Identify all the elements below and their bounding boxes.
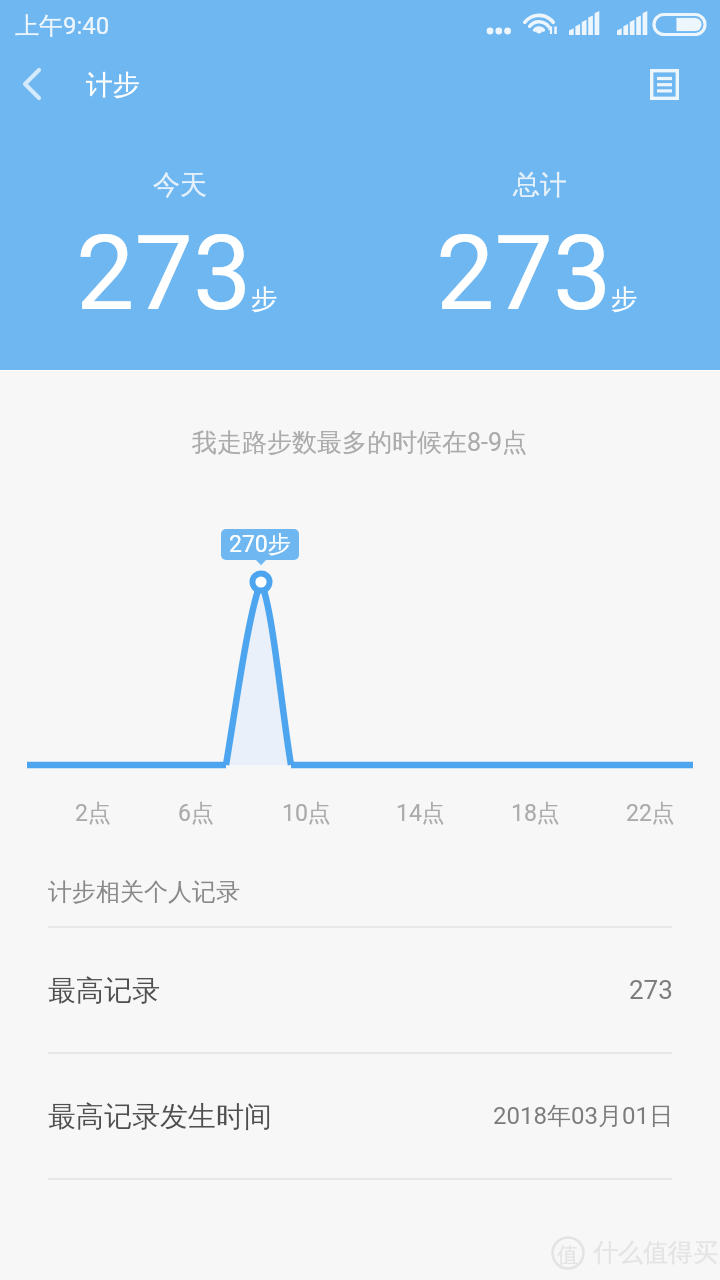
staticText: 273	[76, 213, 252, 335]
staticText: 步	[251, 283, 277, 316]
staticText: 6点	[178, 799, 214, 828]
staticText: 2点	[75, 799, 111, 828]
button[interactable]: 最高记录发生时间	[0, 1054, 720, 1178]
staticText: 今天	[153, 168, 207, 202]
staticText: 最高记录	[48, 973, 160, 1008]
staticText: 总计	[513, 168, 567, 202]
staticText: 上午9:40	[15, 11, 110, 41]
staticText: 10点	[282, 799, 331, 828]
staticText: 273	[436, 213, 612, 335]
staticText: 计步相关个人记录	[48, 877, 240, 907]
staticText: 2018年03月01日	[493, 1101, 673, 1131]
button[interactable]: 最高记录	[0, 928, 720, 1052]
staticText: 270步	[229, 530, 291, 559]
staticText: 18点	[511, 799, 560, 828]
staticText: 我走路步数最多的时候在8-9点	[192, 427, 528, 458]
staticText: 最高记录发生时间	[48, 1099, 272, 1134]
staticText: 步	[611, 283, 637, 316]
staticText: 273	[629, 975, 673, 1005]
staticText: 22点	[626, 799, 675, 828]
staticText: 计步	[86, 68, 140, 102]
staticText: 14点	[396, 799, 445, 828]
button[interactable]: Records	[640, 60, 688, 108]
staticText: 什么值得买	[593, 1237, 718, 1268]
button[interactable]: Back	[0, 56, 64, 112]
staticText: 值	[557, 1242, 578, 1268]
